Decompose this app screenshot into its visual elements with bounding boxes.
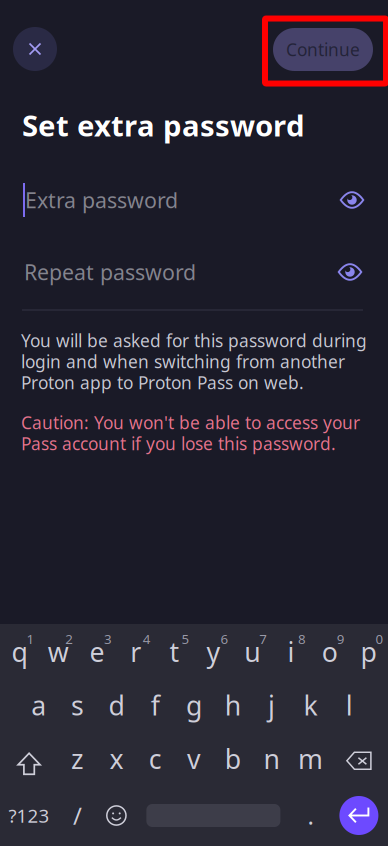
button[interactable]: b [213,734,252,787]
button[interactable]: Emoji [97,787,136,843]
staticText: 7 [259,630,267,648]
staticText: k [303,687,317,723]
button[interactable]: Show password [337,185,367,215]
staticText: / [73,800,82,831]
button[interactable]: Close [13,27,57,71]
button[interactable]: a [19,680,58,734]
button[interactable]: w [39,627,78,680]
staticText: 5 [182,630,190,648]
staticText: i [287,634,294,669]
button[interactable]: p [349,627,388,680]
staticText: 8 [298,630,306,648]
staticText: n [264,741,280,776]
staticText: m [298,741,323,776]
staticText: g [186,687,202,723]
staticText: b [225,741,241,776]
button[interactable]: l [330,680,369,734]
staticText: s [71,687,84,723]
staticText: v [187,741,201,776]
staticText: 3 [104,630,112,648]
staticText: 4 [143,630,151,648]
staticText: c [149,741,162,776]
button[interactable]: u [233,627,272,680]
button[interactable]: Continue [273,28,373,71]
staticText: Continue [286,38,360,61]
button[interactable]: r [116,627,155,680]
staticText: login and when switching from another [21,350,345,373]
button[interactable]: t [155,627,194,680]
button[interactable]: Show repeat password [335,257,365,287]
button[interactable]: Delete [330,734,388,787]
staticText: w [48,634,69,669]
button[interactable]: n [252,734,291,787]
staticText: Caution: You won't be able to access you… [21,411,360,434]
button[interactable]: Space [136,787,291,843]
staticText: u [244,634,260,669]
staticText: 0 [376,630,384,648]
staticText: a [31,687,46,723]
staticText: d [108,687,124,723]
button[interactable]: d [97,680,136,734]
button[interactable]: g [175,680,213,734]
staticText: e [89,634,104,669]
staticText: p [361,634,377,669]
button[interactable]: ?123 [0,787,58,843]
staticText: Proton app to Proton Pass on web. [21,371,304,394]
staticText: 9 [337,630,345,648]
button[interactable]: Shift [0,734,58,787]
button[interactable]: q [0,627,39,680]
staticText: x [109,741,123,776]
staticText: Extra password [25,186,178,214]
staticText: y [206,634,220,669]
button[interactable]: / [58,787,97,843]
staticText: h [225,687,241,723]
button[interactable]: h [213,680,252,734]
staticText: r [130,634,141,669]
staticText: Pass account if you lose this password. [21,432,336,455]
button[interactable]: k [291,680,330,734]
staticText: You will be asked for this password duri… [21,329,367,352]
button[interactable]: Return [330,787,388,843]
staticText: f [151,687,160,723]
staticText: l [346,687,353,723]
staticText: 2 [65,630,73,648]
button[interactable]: i [272,627,310,680]
button[interactable]: e [78,627,116,680]
button[interactable]: j [252,680,291,734]
staticText: ?123 [9,803,50,828]
button[interactable]: c [136,734,175,787]
button[interactable]: v [175,734,213,787]
button[interactable]: z [58,734,97,787]
button[interactable]: o [310,627,349,680]
staticText: j [268,687,275,723]
staticText: 1 [26,630,34,648]
staticText: Set extra password [22,105,305,144]
button[interactable]: y [194,627,233,680]
staticText: 6 [220,630,228,648]
staticText: o [322,634,338,669]
button[interactable]: s [58,680,97,734]
staticText: Repeat password [24,258,196,286]
button[interactable]: . [291,787,330,843]
button[interactable]: m [291,734,330,787]
button[interactable]: f [136,680,175,734]
staticText: t [170,634,180,669]
staticText: z [71,741,84,776]
button[interactable]: x [97,734,136,787]
staticText: q [11,634,27,669]
staticText: . [307,800,313,831]
